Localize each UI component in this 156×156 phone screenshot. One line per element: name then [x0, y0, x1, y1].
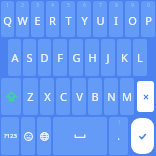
staticText: T — [65, 13, 72, 28]
staticText: . — [117, 129, 120, 143]
staticText: I — [114, 13, 118, 28]
button[interactable]: A — [8, 39, 21, 76]
staticText: O — [128, 13, 137, 28]
staticText: G — [72, 50, 81, 65]
button[interactable]: Enter — [131, 118, 154, 154]
staticText: D — [40, 50, 49, 65]
staticText: Y — [81, 13, 88, 28]
staticText: B — [91, 89, 99, 104]
button[interactable]: 7 — [93, 1, 107, 37]
staticText: R — [49, 13, 56, 28]
staticText: U — [96, 13, 105, 28]
staticText: N — [107, 89, 116, 104]
staticText: S — [26, 50, 33, 65]
button[interactable]: F — [53, 39, 67, 76]
button[interactable]: H — [85, 39, 99, 76]
button[interactable]: 3 — [31, 1, 44, 37]
staticText: Q — [3, 13, 12, 28]
button[interactable]: ! — [109, 117, 128, 155]
staticText: W — [17, 13, 28, 28]
staticText: K — [121, 50, 128, 65]
staticText: Z — [27, 89, 34, 104]
staticText: L — [137, 50, 143, 65]
button[interactable]: G — [69, 39, 83, 76]
button[interactable]: Backspace — [137, 81, 154, 112]
staticText: V — [76, 89, 83, 104]
button[interactable]: B — [88, 78, 102, 115]
staticText: 4 — [51, 2, 54, 8]
button[interactable]: X — [40, 78, 54, 115]
staticText: F — [57, 50, 63, 65]
button[interactable]: 2 — [16, 1, 29, 37]
button[interactable]: C — [56, 78, 70, 115]
staticText: H — [88, 50, 97, 65]
staticText: ?123 — [4, 132, 17, 140]
button[interactable]: 5 — [61, 1, 75, 37]
staticText: X — [44, 89, 51, 104]
staticText: 0 — [147, 2, 150, 8]
button[interactable]: M — [120, 78, 134, 115]
staticText: 2 — [21, 2, 24, 8]
button[interactable]: N — [104, 78, 118, 115]
button[interactable]: J — [101, 39, 115, 76]
button[interactable]: V — [72, 78, 86, 115]
staticText: C — [60, 89, 67, 104]
button[interactable]: Change language — [37, 117, 51, 155]
button[interactable]: ?123 — [1, 117, 19, 155]
button[interactable]: 8 — [109, 1, 123, 37]
button[interactable]: S — [23, 39, 36, 76]
staticText: ! — [118, 119, 120, 125]
button[interactable]: Emoji — [21, 117, 35, 155]
staticText: A — [11, 50, 19, 65]
button[interactable]: 0 — [141, 1, 155, 37]
staticText: 5 — [67, 2, 70, 8]
button[interactable]: K — [117, 39, 131, 76]
staticText: M — [122, 89, 132, 104]
staticText: 7 — [99, 2, 102, 8]
button[interactable]: Shift — [1, 78, 21, 115]
staticText: 6 — [83, 2, 86, 8]
staticText: 3 — [36, 2, 39, 8]
button[interactable]: D — [38, 39, 51, 76]
button[interactable]: 9 — [125, 1, 139, 37]
button[interactable]: 6 — [77, 1, 91, 37]
staticText: 8 — [115, 2, 118, 8]
staticText: 9 — [131, 2, 134, 8]
button[interactable]: L — [133, 39, 147, 76]
button[interactable]: Z — [23, 78, 38, 115]
staticText: E — [34, 13, 41, 28]
button[interactable]: 4 — [46, 1, 59, 37]
staticText: P — [145, 13, 152, 28]
staticText: J — [106, 50, 110, 65]
button[interactable]: 1 — [1, 1, 14, 37]
button[interactable]: Space — [53, 117, 107, 155]
staticText: 1 — [6, 2, 9, 8]
